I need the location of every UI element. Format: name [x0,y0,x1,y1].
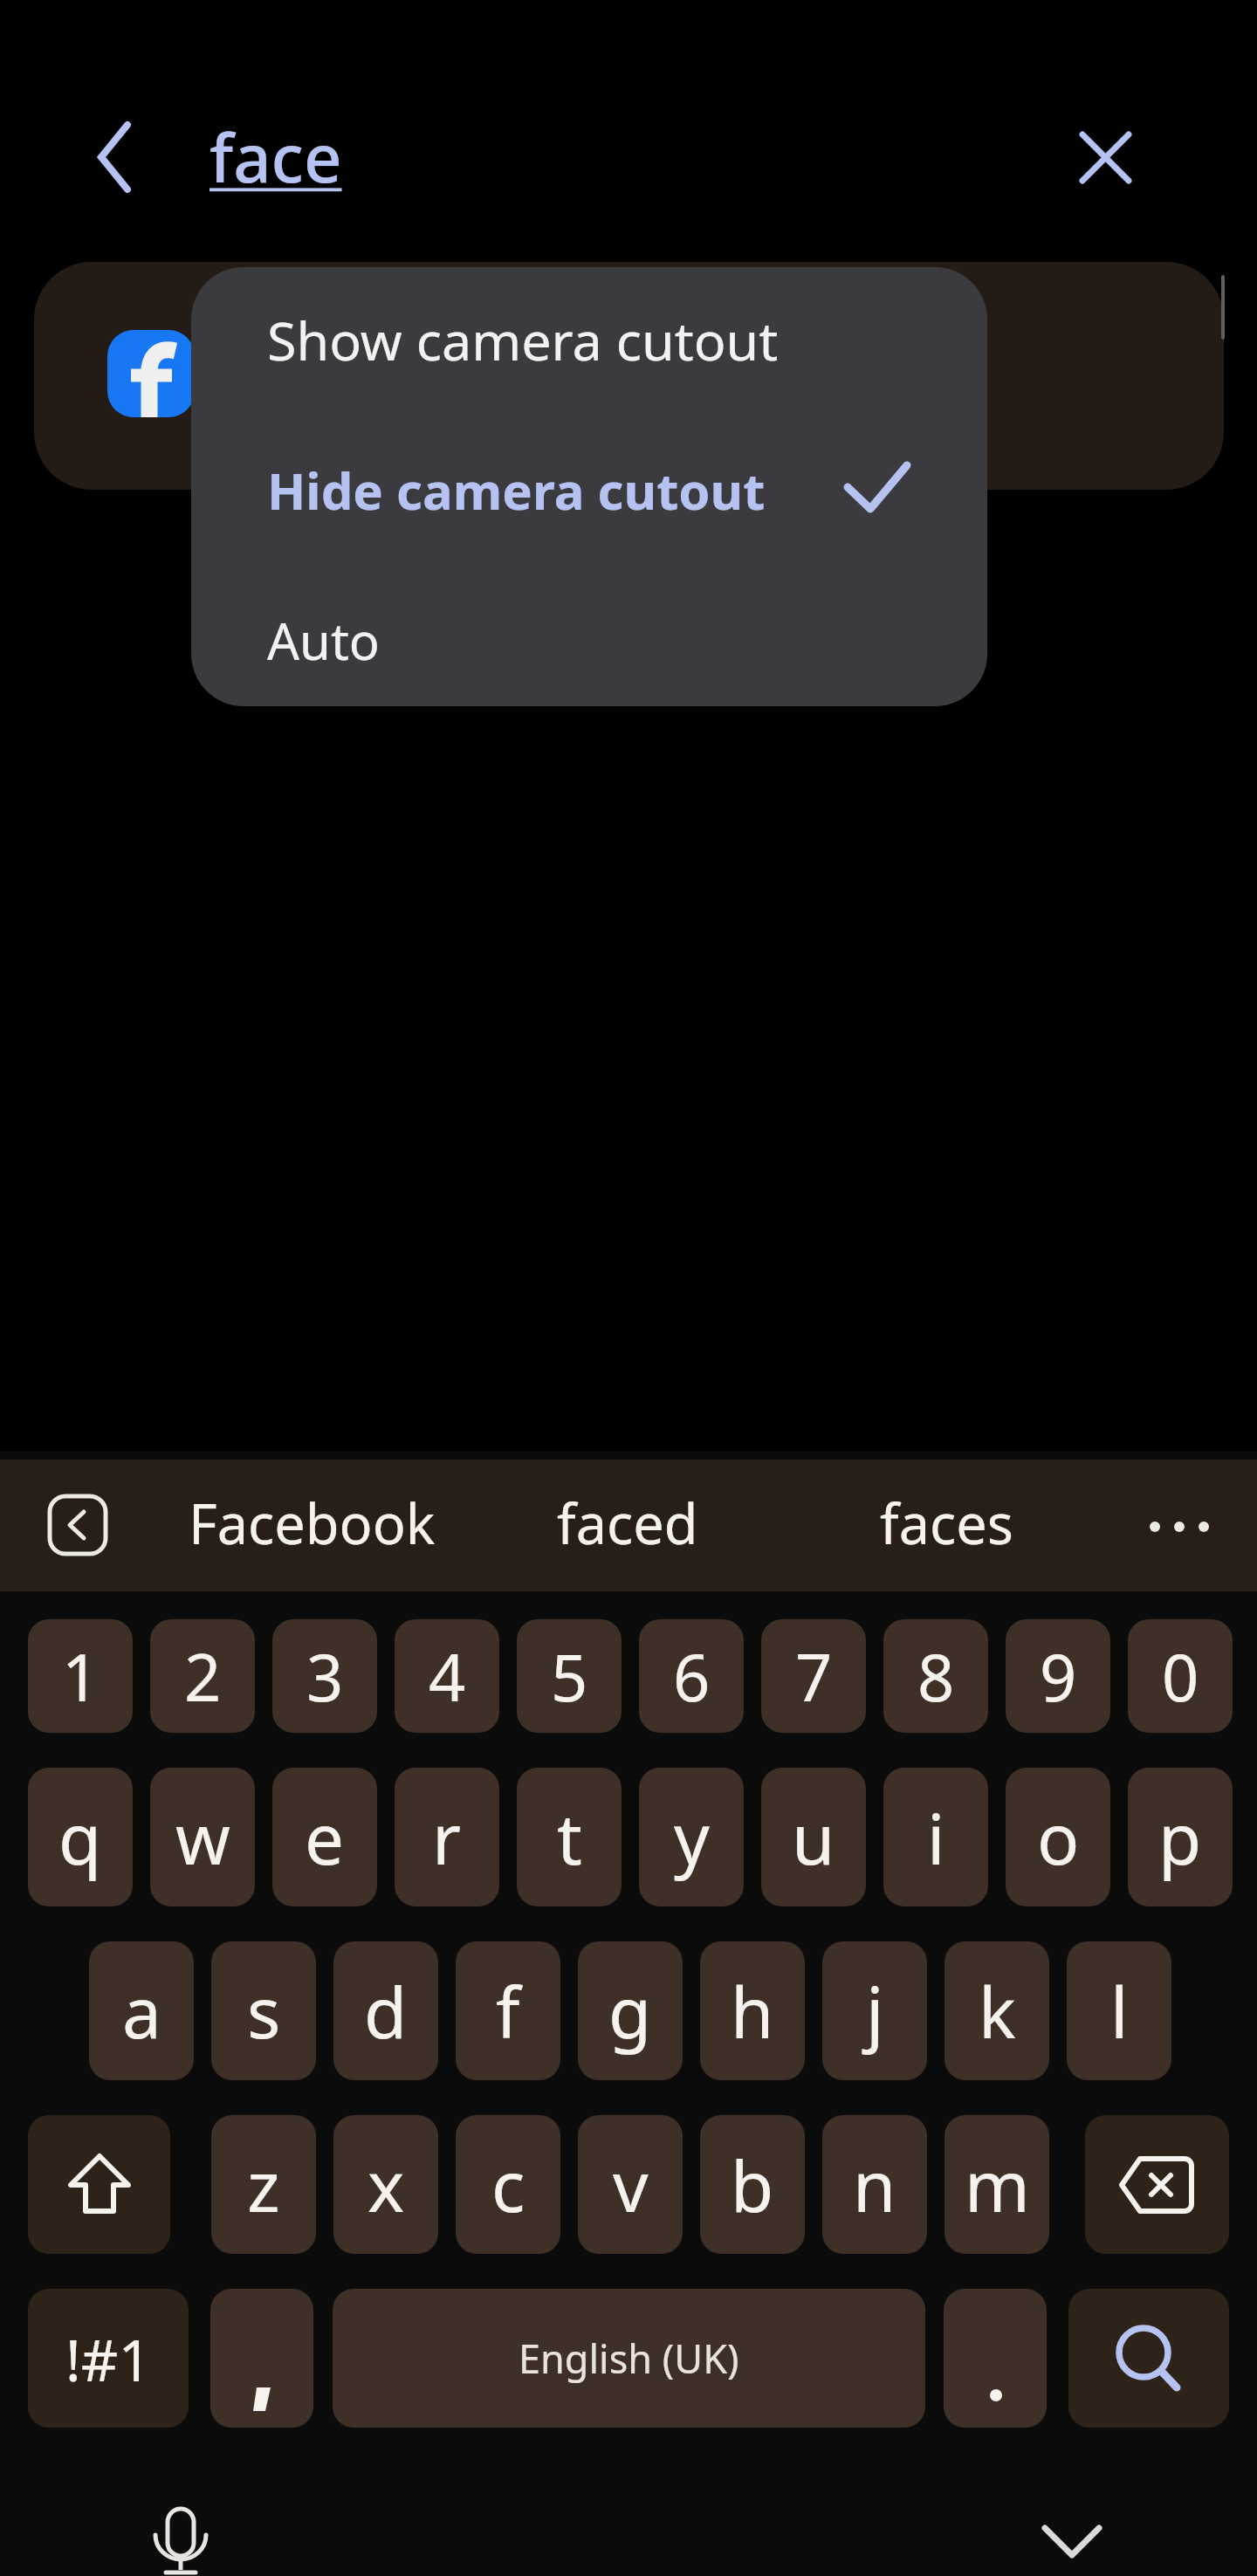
button[interactable] [1034,2514,1113,2566]
button[interactable]: i [883,1768,988,1906]
staticText: Hide camera cutout [267,456,766,525]
staticText: Show camera cutout [267,304,779,376]
staticText: 6 [673,1632,711,1721]
staticText: u [792,1789,835,1885]
button[interactable]: 5 [517,1619,622,1733]
button[interactable]: faces [815,1486,1077,1549]
button[interactable]: b [700,2115,805,2254]
button[interactable]: z [211,2115,316,2254]
button[interactable]: !#1 [28,2289,189,2428]
staticText: h [731,1963,774,2058]
staticText: c [491,2137,525,2232]
button[interactable]: j [822,1941,927,2080]
button[interactable]: c [456,2115,560,2254]
button[interactable] [1061,113,1149,201]
button[interactable] [1135,1501,1222,1554]
button[interactable]: v [578,2115,683,2254]
staticText: face [209,112,342,203]
button[interactable]: a [89,1941,194,2080]
staticText: z [247,2137,280,2232]
staticText: m [965,2137,1030,2232]
button[interactable]: Auto [267,590,878,690]
button[interactable]: 7 [761,1619,866,1733]
button[interactable]: 9 [1006,1619,1110,1733]
staticText: q [58,1789,102,1885]
button[interactable]: r [395,1768,499,1906]
staticText: n [853,2137,896,2232]
button[interactable]: 2 [150,1619,255,1733]
button[interactable] [1068,2289,1229,2428]
button[interactable]: s [211,1941,316,2080]
staticText: English (UK) [519,2332,739,2385]
staticText: x [367,2137,405,2232]
button[interactable]: 0 [1128,1619,1233,1733]
button[interactable]: k [944,1941,1049,2080]
button[interactable]: x [333,2115,438,2254]
staticText: d [364,1963,408,2058]
staticText: 3 [306,1632,344,1721]
button[interactable]: h [700,1941,805,2080]
staticText: r [432,1789,462,1885]
staticText: 5 [551,1632,588,1721]
staticText: Auto [267,606,380,675]
button[interactable]: 4 [395,1619,499,1733]
button[interactable]: 8 [883,1619,988,1733]
button[interactable]: y [639,1768,744,1906]
button[interactable]: g [578,1941,683,2080]
button[interactable]: 1 [28,1619,133,1733]
staticText: 4 [429,1632,466,1721]
staticText: a [122,1963,161,2058]
staticText: 8 [917,1632,955,1721]
button[interactable]: w [150,1768,255,1906]
staticText: f [496,1963,520,2058]
button[interactable] [34,262,1224,490]
staticText: y [674,1789,710,1885]
staticText: j [866,1963,884,2058]
staticText: 7 [795,1632,833,1721]
staticText: g [608,1963,652,2058]
button[interactable]: n [822,2115,927,2254]
staticText: o [1037,1789,1080,1885]
staticText: w [175,1789,230,1885]
button[interactable]: e [272,1768,377,1906]
button[interactable]: 6 [639,1619,744,1733]
button[interactable]: q [28,1768,133,1906]
button[interactable] [1085,2115,1229,2254]
button[interactable] [944,2289,1047,2428]
staticText: faced [557,1486,698,1549]
button[interactable]: Facebook [181,1486,443,1549]
button[interactable]: Hide camera cutout [267,440,878,539]
button[interactable] [28,2115,170,2254]
staticText: b [731,2137,774,2232]
staticText: l [1110,1963,1129,2058]
staticText: k [979,1963,1016,2058]
button[interactable]: English (UK) [333,2289,925,2428]
button[interactable]: m [944,2115,1049,2254]
staticText: 9 [1040,1632,1077,1721]
staticText: Facebook [189,1486,436,1549]
staticText: e [305,1789,345,1885]
staticText: 0 [1162,1632,1199,1721]
staticText: v [613,2137,649,2232]
staticText: faces [880,1486,1013,1549]
button[interactable]: t [517,1768,622,1906]
button[interactable]: p [1128,1768,1233,1906]
button[interactable]: l [1067,1941,1171,2080]
button[interactable]: d [333,1941,438,2080]
staticText: t [557,1789,582,1885]
staticText: 1 [62,1632,100,1721]
button[interactable]: 3 [272,1619,377,1733]
button[interactable]: faced [497,1486,759,1549]
staticText: p [1158,1789,1202,1885]
staticText: i [927,1789,945,1885]
button[interactable]: u [761,1768,866,1906]
button[interactable]: f [456,1941,560,2080]
button[interactable]: Show camera cutout [267,290,878,389]
staticText: s [247,1963,281,2058]
button[interactable] [79,113,166,201]
button[interactable]: o [1006,1768,1110,1906]
button[interactable] [210,2289,313,2428]
button[interactable] [140,2502,222,2576]
staticText: 2 [184,1632,222,1721]
staticText: !#1 [65,2319,152,2398]
